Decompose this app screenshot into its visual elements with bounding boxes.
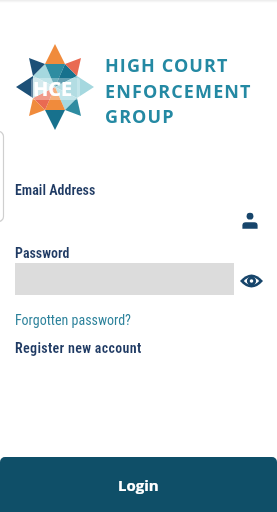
staticText: HIGH COURT ENFORCEMENT GROUP (105, 53, 252, 128)
button[interactable]: Register new account (15, 340, 142, 356)
staticText: HCE (33, 75, 73, 102)
staticText: Password (15, 245, 70, 261)
button[interactable]: Login (0, 457, 277, 512)
button[interactable] (238, 205, 262, 233)
button[interactable]: Forgotten password? (15, 312, 132, 328)
staticText: Register new account (15, 340, 142, 356)
staticText: Forgotten password? (15, 312, 132, 328)
staticText: Email Address (15, 182, 96, 198)
staticText: Login (118, 475, 159, 495)
button[interactable] (239, 268, 264, 294)
